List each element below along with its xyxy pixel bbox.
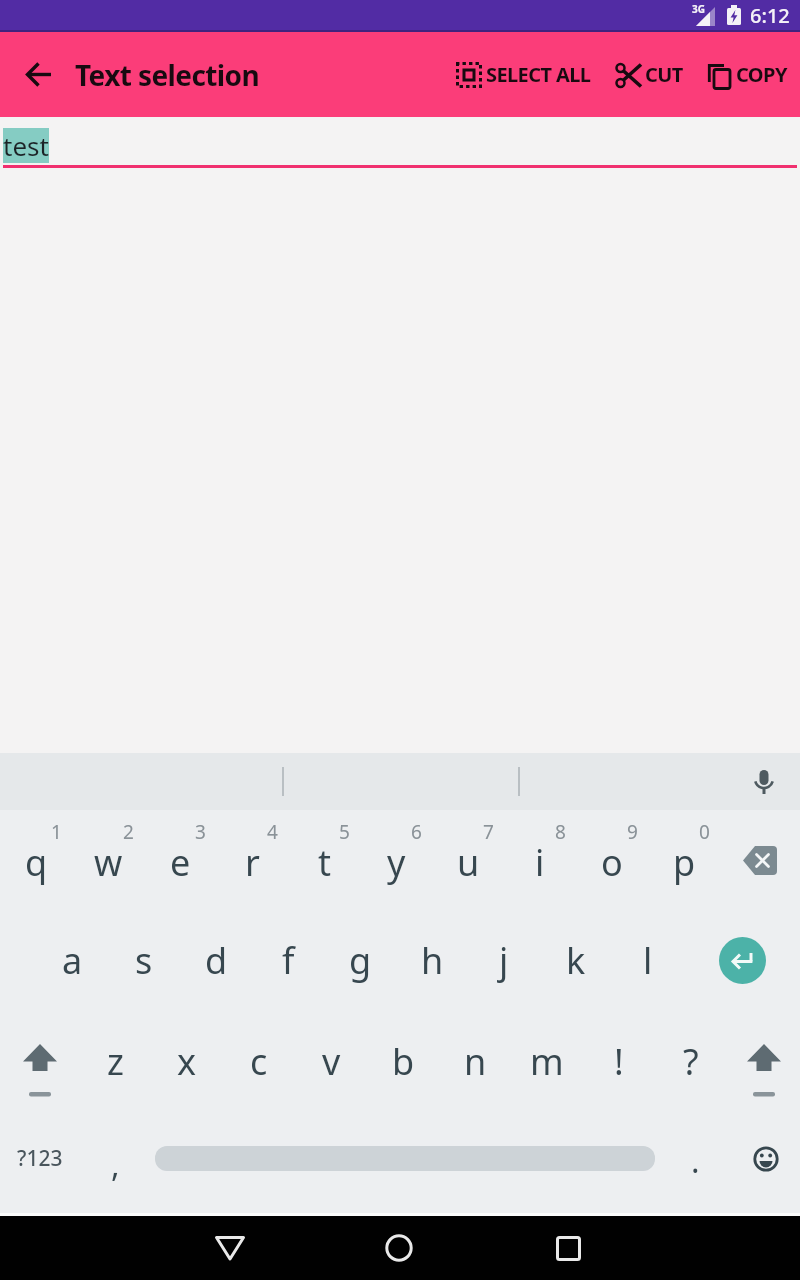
staticText: n <box>464 1037 487 1086</box>
button[interactable]: d <box>180 910 252 1011</box>
staticText: t <box>318 838 331 887</box>
button[interactable] <box>11 32 67 117</box>
button[interactable] <box>151 1108 659 1209</box>
staticText: y <box>387 838 406 887</box>
staticText: e <box>170 838 191 887</box>
button[interactable]: a <box>36 910 108 1011</box>
button[interactable]: 0 <box>648 810 720 910</box>
staticText: v <box>322 1037 341 1086</box>
staticText: 9 <box>627 819 638 845</box>
button[interactable] <box>727 1011 800 1112</box>
button[interactable]: 8 <box>504 810 576 910</box>
button[interactable]: b <box>367 1011 439 1112</box>
button[interactable]: 5 <box>288 810 360 910</box>
staticText: ?123 <box>17 1144 63 1173</box>
staticText: g <box>349 936 372 985</box>
staticText: h <box>421 936 444 985</box>
button[interactable]: k <box>540 910 612 1011</box>
staticText: 3G <box>692 2 705 16</box>
staticText: z <box>107 1037 124 1086</box>
staticText: f <box>282 936 295 985</box>
button[interactable]: l <box>612 910 684 1011</box>
button[interactable]: v <box>295 1011 367 1112</box>
staticText: r <box>245 838 260 887</box>
button[interactable] <box>731 1108 800 1209</box>
staticText: l <box>643 936 653 985</box>
staticText: 5 <box>339 819 350 845</box>
button[interactable]: . <box>659 1108 731 1209</box>
staticText: 4 <box>267 819 278 845</box>
staticText: COPY <box>736 61 787 88</box>
staticText: test <box>3 128 49 163</box>
button[interactable] <box>196 1216 264 1280</box>
button[interactable]: 1 <box>0 810 72 910</box>
button[interactable] <box>365 1216 433 1280</box>
button[interactable]: ?123 <box>0 1108 80 1209</box>
button[interactable]: 2 <box>72 810 144 910</box>
staticText: 0 <box>699 819 710 845</box>
button[interactable]: j <box>468 910 540 1011</box>
staticText: p <box>673 838 696 887</box>
staticText: u <box>457 838 480 887</box>
button[interactable]: 7 <box>432 810 504 910</box>
staticText: b <box>392 1037 415 1086</box>
staticText: a <box>62 936 83 985</box>
button[interactable]: test <box>0 117 800 168</box>
staticText: k <box>566 936 586 985</box>
button[interactable]: m <box>511 1011 583 1112</box>
staticText: o <box>601 838 623 887</box>
staticText: i <box>535 838 545 887</box>
button[interactable]: x <box>151 1011 223 1112</box>
button[interactable]: z <box>79 1011 151 1112</box>
button[interactable]: ? <box>655 1011 727 1112</box>
button[interactable] <box>739 753 788 810</box>
button[interactable]: 3 <box>144 810 216 910</box>
staticText: s <box>135 936 153 985</box>
button[interactable]: SELECT ALL <box>452 32 595 117</box>
staticText: x <box>177 1037 197 1086</box>
staticText: 6 <box>411 819 422 845</box>
button[interactable]: 9 <box>576 810 648 910</box>
staticText: q <box>25 838 48 887</box>
button[interactable]: f <box>252 910 324 1011</box>
button[interactable]: g <box>324 910 396 1011</box>
staticText: SELECT ALL <box>486 61 591 88</box>
button[interactable]: 6 <box>360 810 432 910</box>
staticText: w <box>94 838 123 887</box>
staticText: 3 <box>195 819 206 845</box>
button[interactable]: ! <box>583 1011 655 1112</box>
staticText: 1 <box>51 819 62 845</box>
button[interactable]: s <box>108 910 180 1011</box>
staticText: ! <box>614 1037 624 1086</box>
staticText: CUT <box>645 61 683 88</box>
staticText: , <box>111 1143 120 1187</box>
staticText: 7 <box>483 819 494 845</box>
button[interactable]: , <box>80 1108 151 1209</box>
staticText: 2 <box>123 819 134 845</box>
staticText: . <box>691 1139 700 1183</box>
button[interactable] <box>719 937 766 984</box>
staticText: 6:12 <box>750 2 790 29</box>
staticText: 8 <box>555 819 566 845</box>
staticText: ? <box>683 1037 699 1086</box>
button[interactable]: h <box>396 910 468 1011</box>
button[interactable]: 4 <box>216 810 288 910</box>
staticText: c <box>250 1037 268 1086</box>
button[interactable]: n <box>439 1011 511 1112</box>
button[interactable]: CUT <box>611 32 687 117</box>
button[interactable] <box>534 1216 602 1280</box>
staticText: m <box>530 1037 564 1086</box>
button[interactable]: COPY <box>703 32 800 117</box>
button[interactable] <box>0 1011 79 1112</box>
button[interactable] <box>720 810 800 910</box>
staticText: d <box>205 936 228 985</box>
staticText: j <box>499 936 509 985</box>
button[interactable]: c <box>223 1011 295 1112</box>
staticText: Text selection <box>75 56 260 94</box>
